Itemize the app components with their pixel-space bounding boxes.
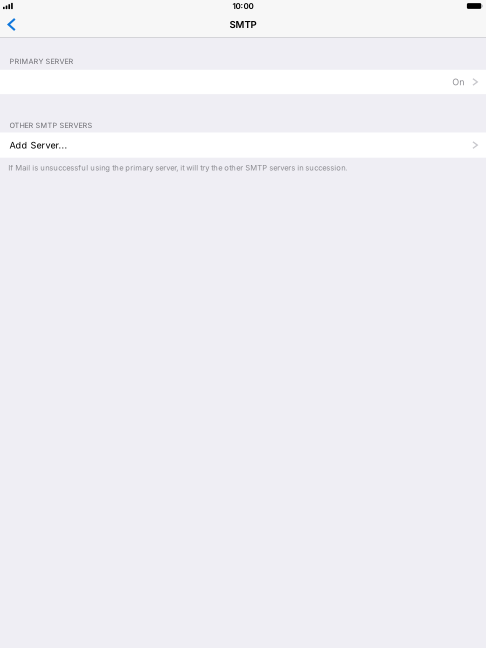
staticText: If Mail is unsuccessful using the primar… [8, 163, 347, 172]
staticText: Add Server... [9, 140, 67, 151]
button[interactable]: Back [0, 12, 23, 37]
staticText: 10:00 [232, 1, 253, 11]
staticText: OTHER SMTP SERVERS [9, 121, 92, 130]
button[interactable]: Add Server... [0, 132, 486, 158]
staticText: PRIMARY SERVER [9, 57, 73, 66]
staticText: SMTP [229, 19, 256, 30]
button[interactable]: On [0, 70, 486, 94]
staticText: On [452, 76, 464, 87]
